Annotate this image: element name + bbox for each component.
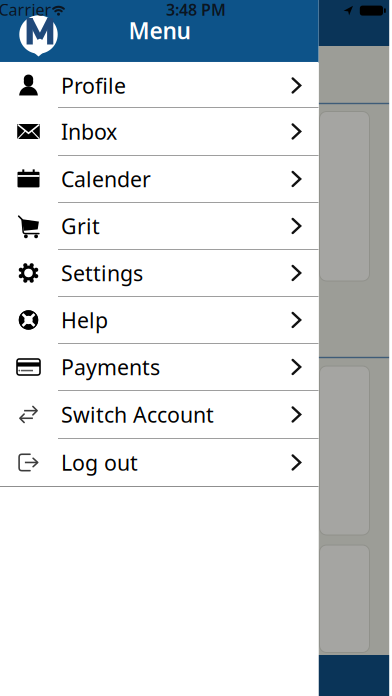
button[interactable]: Inbox xyxy=(0,108,318,155)
staticText: Help xyxy=(61,306,108,334)
button[interactable]: Calender xyxy=(0,155,318,203)
staticText: Menu xyxy=(128,15,190,45)
staticText: Carrier xyxy=(0,0,51,20)
staticText: Log out xyxy=(61,448,138,477)
staticText: Profile xyxy=(61,71,126,100)
button[interactable]: Grit xyxy=(0,202,318,250)
button[interactable]: Profile xyxy=(0,62,318,109)
staticText: Inbox xyxy=(61,117,117,146)
staticText: Settings xyxy=(61,259,143,287)
button[interactable]: Help xyxy=(0,296,318,344)
staticText: 3:48 PM xyxy=(166,0,226,20)
button[interactable]: Switch Account xyxy=(0,391,318,438)
staticText: Calender xyxy=(61,165,151,193)
button[interactable]: Log out xyxy=(0,439,318,486)
staticText: Payments xyxy=(61,353,160,381)
button[interactable]: Payments xyxy=(0,343,318,391)
staticText: Switch Account xyxy=(61,400,214,429)
button[interactable]: Settings xyxy=(0,249,318,297)
staticText: Grit xyxy=(61,212,100,240)
